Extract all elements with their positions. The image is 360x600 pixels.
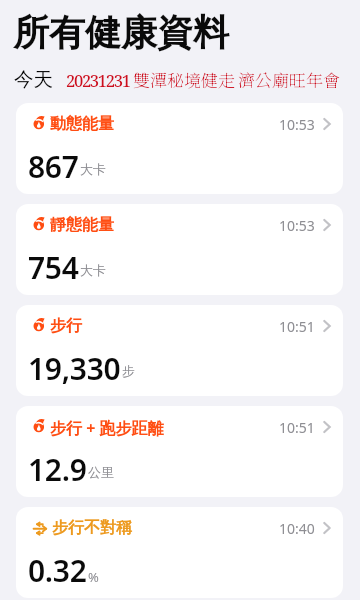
staticText: 0.32 bbox=[28, 550, 87, 591]
staticText: 10:53 bbox=[279, 115, 315, 134]
button[interactable]: 步行 + 跑步距離 bbox=[16, 406, 343, 497]
staticText: 12.9 bbox=[28, 449, 87, 490]
staticText: 10:51 bbox=[279, 418, 315, 437]
staticText: 濟公廟旺年會 bbox=[238, 67, 340, 91]
button[interactable]: 步行不對稱 bbox=[16, 507, 343, 598]
staticText: 今天 bbox=[14, 67, 53, 92]
staticText: 步 bbox=[122, 363, 135, 379]
staticText: 19,330 bbox=[28, 348, 121, 389]
button[interactable]: 步行 bbox=[16, 305, 343, 396]
staticText: 10:40 bbox=[279, 519, 315, 538]
staticText: 靜態能量 bbox=[50, 215, 114, 235]
staticText: 所有健康資料 bbox=[13, 10, 229, 55]
staticText: 公里 bbox=[88, 464, 114, 480]
staticText: 867 bbox=[28, 146, 79, 187]
staticText: 雙潭秘境健走 bbox=[133, 67, 235, 91]
staticText: % bbox=[88, 568, 99, 586]
button[interactable]: 靜態能量 bbox=[16, 204, 343, 295]
staticText: 動態能量 bbox=[50, 114, 114, 134]
button[interactable]: 動態能量 bbox=[16, 103, 343, 194]
staticText: 10:51 bbox=[279, 317, 315, 336]
staticText: 10:53 bbox=[279, 216, 315, 235]
staticText: 步行 + 跑步距離 bbox=[50, 417, 164, 437]
staticText: 步行 bbox=[50, 316, 82, 336]
staticText: 20231231 bbox=[66, 69, 130, 91]
staticText: 大卡 bbox=[80, 262, 106, 278]
staticText: 754 bbox=[28, 247, 79, 288]
staticText: 步行不對稱 bbox=[52, 518, 132, 538]
staticText: 大卡 bbox=[80, 161, 106, 177]
